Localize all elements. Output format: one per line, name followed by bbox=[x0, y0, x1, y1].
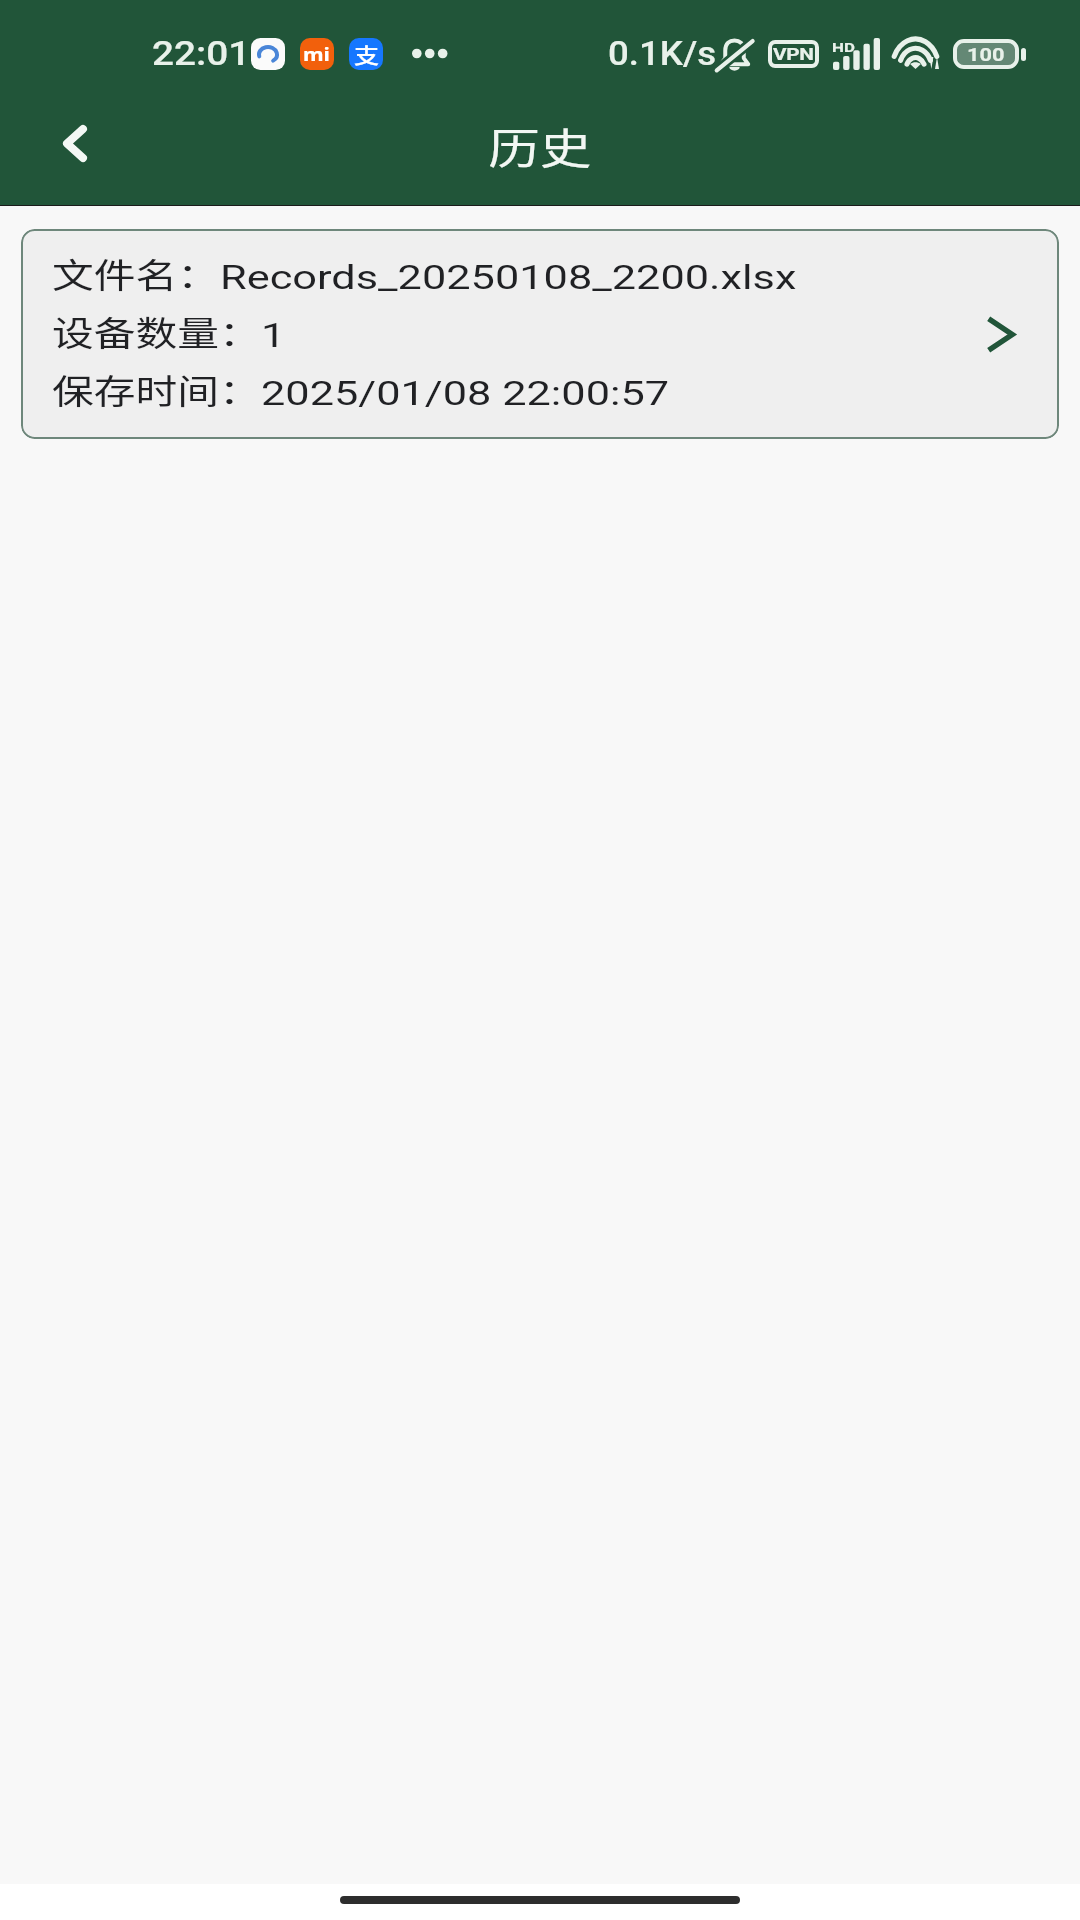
staticText: 0.1K/s bbox=[608, 34, 717, 73]
staticText: 2025/01/08 22:00:57 bbox=[261, 373, 670, 413]
staticText: Records_20250108_2200.xlsx bbox=[220, 257, 797, 297]
staticText: 保存时间： bbox=[52, 364, 261, 413]
staticText: 22:01 bbox=[152, 34, 251, 73]
button[interactable]: 文件名： bbox=[21, 229, 1059, 439]
staticText: HD bbox=[832, 39, 856, 55]
staticText: VPN bbox=[773, 44, 814, 64]
staticText: mi bbox=[303, 42, 331, 66]
staticText: 100 bbox=[967, 44, 1005, 65]
staticText: 设备数量： bbox=[52, 306, 261, 355]
button[interactable]: Back bbox=[31, 94, 119, 193]
staticText: 1 bbox=[261, 315, 286, 355]
staticText: 历史 bbox=[488, 115, 592, 176]
staticText: 文件名： bbox=[52, 248, 220, 297]
staticText: 支 bbox=[354, 39, 379, 69]
